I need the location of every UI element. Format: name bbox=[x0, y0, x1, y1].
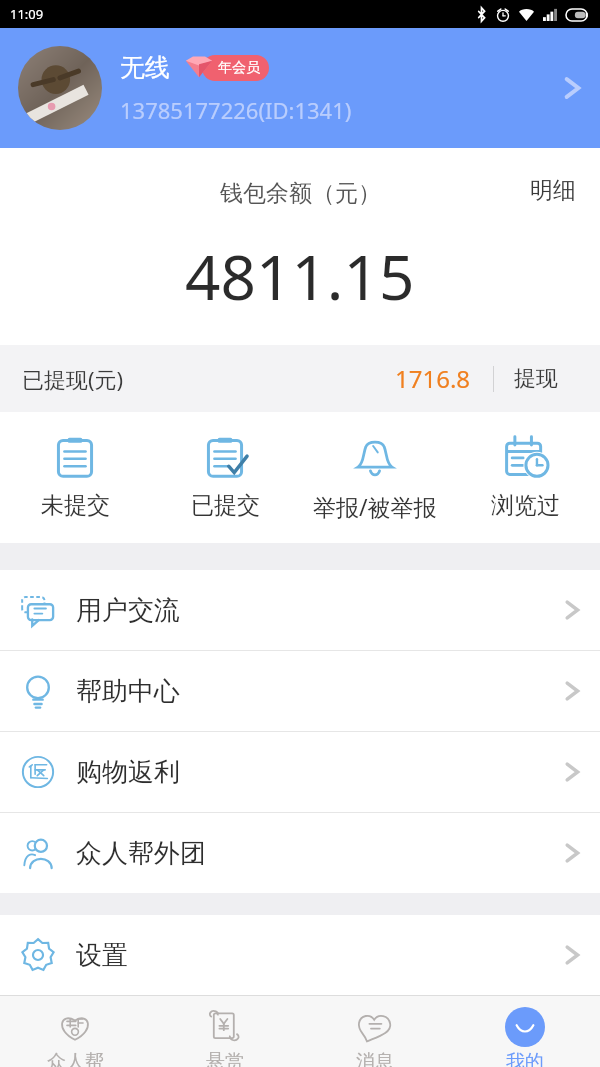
staticText: 消息 bbox=[356, 1050, 394, 1067]
staticText: 购物返利 bbox=[76, 756, 180, 789]
staticText: 1716.8 bbox=[395, 362, 471, 395]
button[interactable]: 未提交 bbox=[0, 412, 150, 543]
button[interactable]: 明细 bbox=[512, 148, 600, 215]
staticText: 钱包余额（元） bbox=[220, 179, 381, 208]
staticText: 提现 bbox=[514, 365, 558, 393]
staticText: 4811.15 bbox=[185, 234, 415, 318]
staticText: 帮助中心 bbox=[76, 675, 180, 708]
staticText: 设置 bbox=[76, 939, 128, 972]
staticText: 已提交 bbox=[191, 491, 260, 520]
button[interactable]: 悬赏 bbox=[150, 996, 300, 1067]
button[interactable]: 消息 bbox=[300, 996, 450, 1067]
staticText: 举报/被举报 bbox=[313, 491, 437, 522]
button[interactable]: 浏览过 bbox=[450, 412, 600, 543]
button[interactable]: 众人帮外团 bbox=[0, 813, 600, 893]
button[interactable]: 设置 bbox=[0, 915, 600, 995]
button[interactable]: 购物返利 bbox=[0, 732, 600, 812]
button[interactable]: 无线 bbox=[0, 28, 600, 148]
staticText: 众人帮 bbox=[47, 1050, 104, 1067]
button[interactable]: 提现 bbox=[494, 357, 578, 401]
button[interactable]: 用户交流 bbox=[0, 570, 600, 650]
staticText: 无线 bbox=[120, 52, 170, 83]
staticText: 已提现(元) bbox=[22, 364, 124, 394]
button[interactable]: 众人帮 bbox=[0, 996, 150, 1067]
staticText: 11:09 bbox=[10, 5, 44, 23]
button[interactable]: 帮助中心 bbox=[0, 651, 600, 731]
staticText: 年会员 bbox=[218, 59, 260, 77]
staticText: 未提交 bbox=[41, 491, 110, 520]
button[interactable]: 已提交 bbox=[150, 412, 300, 543]
button[interactable]: 举报/被举报 bbox=[300, 412, 450, 543]
staticText: 浏览过 bbox=[491, 491, 560, 520]
staticText: 明细 bbox=[530, 176, 576, 205]
staticText: 悬赏 bbox=[206, 1050, 244, 1067]
button[interactable]: 我的 bbox=[450, 996, 600, 1067]
staticText: 用户交流 bbox=[76, 594, 180, 627]
staticText: 众人帮外团 bbox=[76, 837, 206, 870]
staticText: 我的 bbox=[506, 1050, 544, 1067]
staticText: 13785177226(ID:1341) bbox=[120, 95, 352, 125]
